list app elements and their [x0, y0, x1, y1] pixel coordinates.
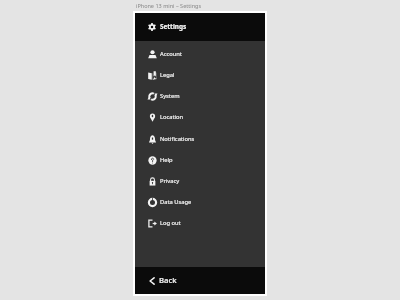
button[interactable]: Back [135, 267, 265, 294]
button[interactable]: Log out [135, 213, 265, 234]
staticText: Notifications [160, 135, 195, 143]
button[interactable]: System [135, 86, 265, 107]
staticText: Log out [160, 219, 181, 227]
staticText: Help [160, 156, 173, 164]
staticText: Privacy [160, 177, 180, 185]
button[interactable]: Legal [135, 65, 265, 86]
button[interactable]: Account [135, 44, 265, 65]
button[interactable]: Help [135, 150, 265, 171]
staticText: Data Usage [160, 198, 192, 206]
staticText: Location [160, 113, 184, 121]
button[interactable]: Data Usage [135, 192, 265, 213]
button[interactable]: Settings [135, 13, 265, 41]
staticText: Account [160, 50, 182, 58]
staticText: iPhone 13 mini – Settings [136, 2, 202, 9]
button[interactable]: Location [135, 107, 265, 128]
staticText: Settings [160, 22, 187, 31]
staticText: Back [159, 275, 177, 285]
staticText: Legal [160, 71, 175, 79]
button[interactable]: Privacy [135, 171, 265, 192]
button[interactable]: Notifications [135, 129, 265, 150]
staticText: System [160, 92, 180, 100]
